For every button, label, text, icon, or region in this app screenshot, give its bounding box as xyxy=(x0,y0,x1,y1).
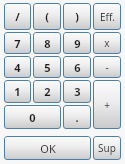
button[interactable]: + xyxy=(93,80,121,129)
button[interactable]: 7 xyxy=(4,32,31,54)
staticText: 6 xyxy=(74,60,81,75)
staticText: 7 xyxy=(14,36,21,51)
button[interactable]: 5 xyxy=(33,56,61,78)
button[interactable]: 9 xyxy=(63,32,91,54)
staticText: x xyxy=(104,36,110,50)
staticText: 4 xyxy=(14,60,21,75)
staticText: 3 xyxy=(74,84,81,99)
button[interactable]: 3 xyxy=(63,80,91,103)
button[interactable]: Sup xyxy=(93,136,121,160)
button[interactable]: 0 xyxy=(4,105,61,129)
button[interactable]: / xyxy=(4,3,31,30)
staticText: 0 xyxy=(29,110,36,125)
button[interactable]: - xyxy=(93,56,121,78)
staticText: + xyxy=(104,98,110,112)
button[interactable]: Eff. xyxy=(93,3,121,30)
staticText: . xyxy=(75,110,79,125)
staticText: 5 xyxy=(44,60,51,75)
staticText: Sup xyxy=(98,141,116,155)
staticText: OK xyxy=(40,141,56,156)
button[interactable]: ) xyxy=(63,3,91,30)
staticText: 1 xyxy=(14,84,21,99)
button[interactable]: . xyxy=(63,105,91,129)
staticText: Eff. xyxy=(100,10,115,24)
staticText: ) xyxy=(75,9,79,24)
button[interactable]: 1 xyxy=(4,80,31,103)
button[interactable]: 2 xyxy=(33,80,61,103)
button[interactable]: 6 xyxy=(63,56,91,78)
staticText: 9 xyxy=(74,36,81,51)
button[interactable]: OK xyxy=(4,136,91,160)
button[interactable]: 4 xyxy=(4,56,31,78)
staticText: 2 xyxy=(44,84,51,99)
staticText: ( xyxy=(45,9,49,24)
staticText: - xyxy=(105,60,109,74)
staticText: / xyxy=(15,9,20,24)
button[interactable]: x xyxy=(93,32,121,54)
button[interactable]: 8 xyxy=(33,32,61,54)
button[interactable]: ( xyxy=(33,3,61,30)
staticText: 8 xyxy=(44,36,51,51)
